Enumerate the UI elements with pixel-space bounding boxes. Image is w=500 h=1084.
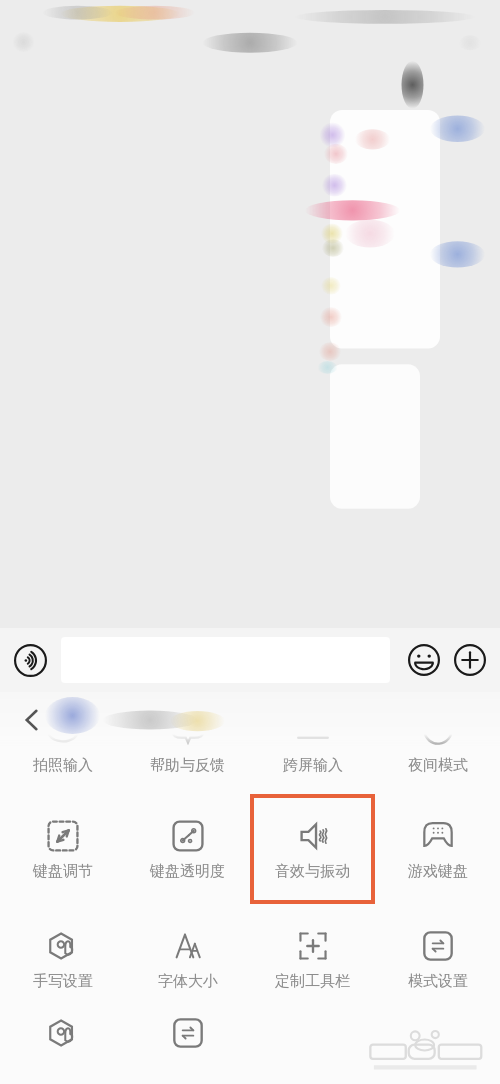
button[interactable]: 拍照输入 (0, 692, 125, 794)
button[interactable]: More setting (0, 1014, 125, 1084)
staticText: 音效与振动 (275, 862, 350, 881)
staticText: 游戏键盘 (408, 862, 468, 881)
staticText: 模式设置 (408, 972, 468, 991)
button[interactable]: 手写设置 (0, 904, 125, 1014)
button[interactable]: Back (12, 700, 52, 740)
staticText: 手写设置 (33, 972, 93, 991)
button[interactable]: 音效与振动 (250, 794, 375, 904)
staticText: 字体大小 (158, 972, 218, 991)
button[interactable]: More (454, 644, 486, 676)
staticText: 夜间模式 (408, 756, 468, 775)
staticText: 帮助与反馈 (150, 756, 225, 775)
button[interactable]: 字体大小 (125, 904, 250, 1014)
staticText: 拍照输入 (33, 756, 93, 775)
button[interactable]: 夜间模式 (375, 692, 500, 794)
button[interactable]: More setting (125, 1014, 250, 1084)
button[interactable]: Voice input (14, 644, 47, 677)
button[interactable]: 键盘调节 (0, 794, 125, 904)
staticText: 跨屏输入 (283, 756, 343, 775)
staticText: 键盘透明度 (150, 862, 225, 881)
button[interactable]: 帮助与反馈 (125, 692, 250, 794)
staticText: 定制工具栏 (275, 972, 350, 991)
button[interactable]: 模式设置 (375, 904, 500, 1014)
button[interactable]: Emoji (408, 644, 440, 676)
button[interactable]: 游戏键盘 (375, 794, 500, 904)
staticText: 键盘调节 (33, 862, 93, 881)
button[interactable]: 定制工具栏 (250, 904, 375, 1014)
button[interactable]: 跨屏输入 (250, 692, 375, 794)
button[interactable]: 键盘透明度 (125, 794, 250, 904)
